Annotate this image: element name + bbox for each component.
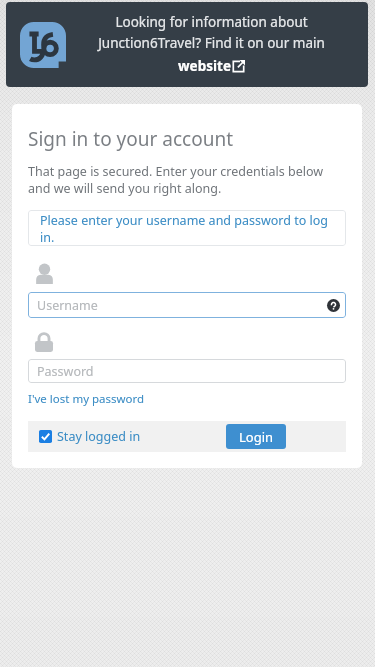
button[interactable]: Username: [28, 292, 346, 318]
button[interactable]: Password: [28, 359, 346, 383]
button[interactable]: Login: [226, 424, 286, 449]
button[interactable]: I've lost my password: [28, 390, 145, 408]
staticText: Junction6Travel? Find it on our main: [98, 34, 325, 52]
staticText: That page is secured. Enter your credent…: [28, 163, 346, 196]
staticText: website: [178, 57, 231, 75]
staticText: Please enter your username and password …: [40, 212, 334, 245]
staticText: Password: [37, 363, 94, 380]
button[interactable]: website: [176, 56, 247, 76]
staticText: Stay logged in: [57, 428, 141, 445]
staticText: Sign in to your account: [28, 126, 234, 152]
staticText: I've lost my password: [28, 391, 145, 407]
other: Open website: [232, 60, 245, 73]
button[interactable]: Help: [327, 299, 340, 312]
staticText: Login: [239, 428, 274, 446]
button[interactable]: Stay logged in: [39, 428, 141, 445]
staticText: Looking for information about: [115, 13, 308, 31]
staticText: Username: [37, 297, 98, 314]
